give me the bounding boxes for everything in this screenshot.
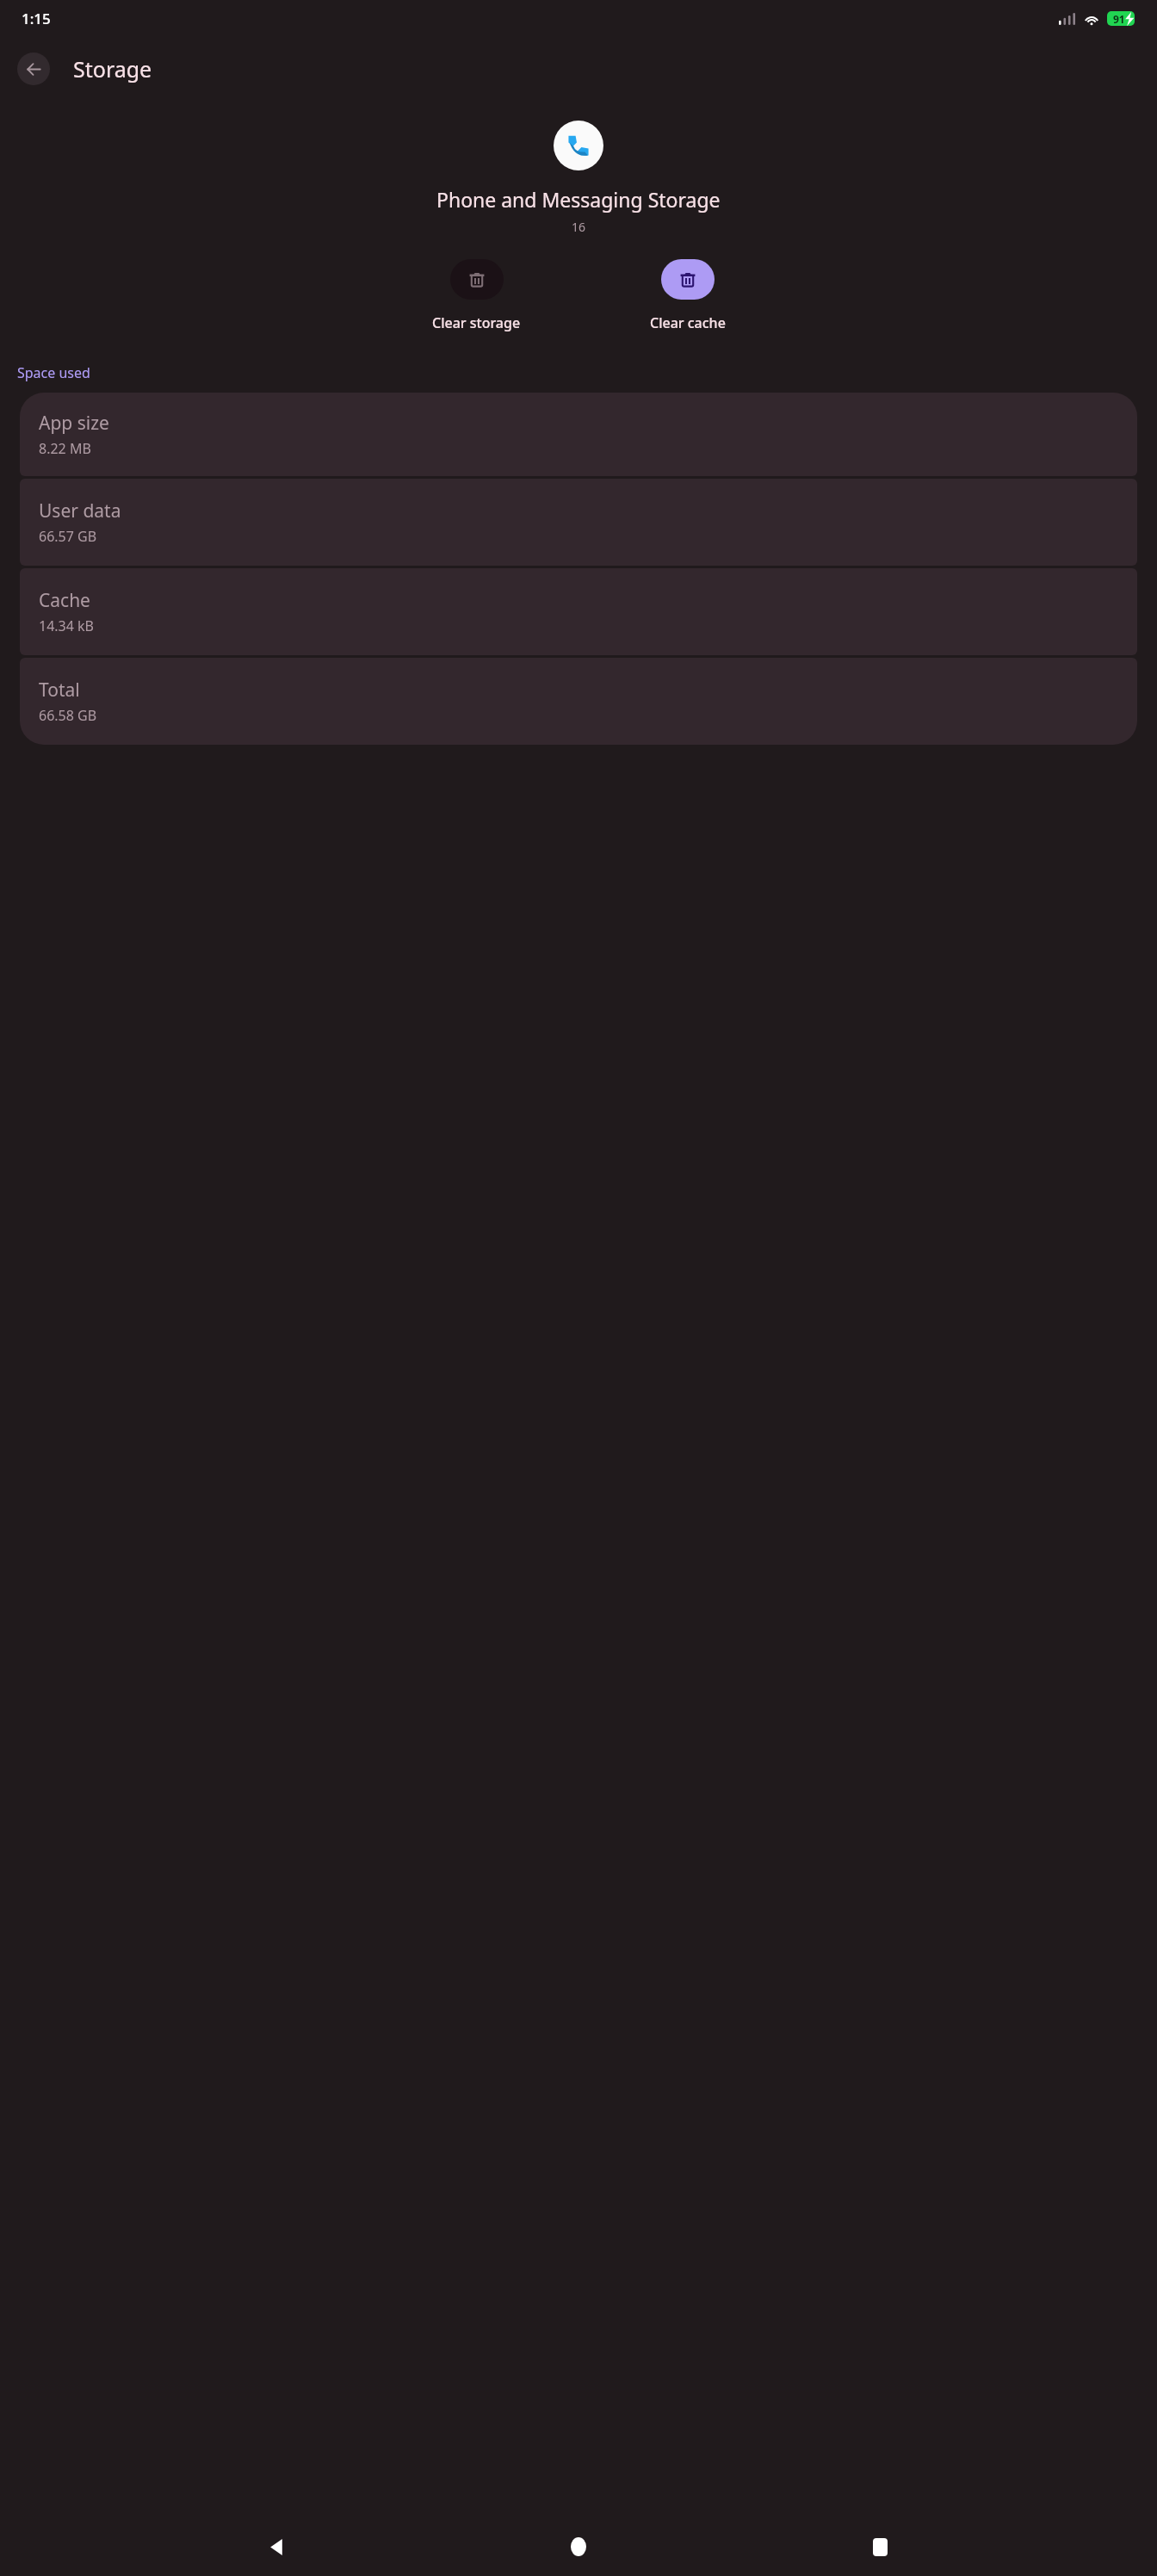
staticText: Clear storage	[432, 313, 521, 332]
button[interactable]: Clear storage	[432, 259, 521, 332]
staticText: 66.57 GB	[39, 527, 97, 546]
button[interactable]: User data	[20, 479, 1137, 566]
staticText: Space used	[17, 363, 90, 382]
button[interactable]: Recent apps	[856, 2523, 904, 2571]
button[interactable]: Home	[554, 2523, 603, 2571]
staticText: 66.58 GB	[39, 706, 97, 725]
staticText: Storage	[73, 54, 152, 84]
staticText: Phone and Messaging Storage	[436, 186, 721, 213]
staticText: 1:15	[22, 9, 51, 28]
staticText: App size	[39, 411, 109, 436]
staticText: User data	[39, 498, 121, 523]
button[interactable]: Cache	[20, 568, 1137, 655]
button[interactable]: Back	[253, 2523, 301, 2571]
button[interactable]: Clear cache	[650, 259, 726, 332]
button[interactable]: Back	[17, 53, 50, 85]
staticText: 91	[1113, 12, 1125, 26]
staticText: Total	[39, 678, 80, 703]
staticText: 8.22 MB	[39, 439, 91, 458]
staticText: Clear cache	[650, 313, 726, 332]
button[interactable]: App size	[20, 393, 1137, 476]
button[interactable]: Total	[20, 658, 1137, 745]
staticText: 14.34 kB	[39, 616, 95, 635]
staticText: Cache	[39, 588, 90, 613]
staticText: 16	[572, 219, 586, 235]
